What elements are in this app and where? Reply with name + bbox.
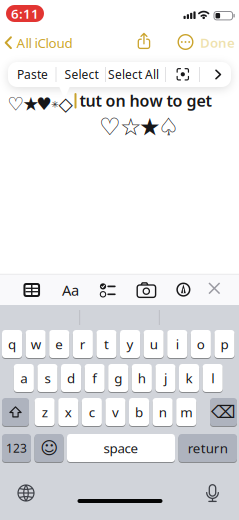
staticText: 6:11 [11, 5, 39, 22]
button[interactable]: u [144, 330, 164, 358]
button[interactable]: e [49, 330, 69, 358]
button[interactable]: b [129, 398, 149, 426]
staticText: g [114, 369, 122, 387]
staticText: ♡ [7, 93, 24, 115]
staticText: Done [200, 34, 235, 51]
button[interactable]: Emoji [34, 434, 63, 462]
staticText: t [104, 335, 109, 353]
button[interactable]: Scan Text [177, 68, 189, 80]
staticText: l [211, 369, 214, 387]
staticText: ★ [139, 113, 161, 141]
staticText: Paste [17, 66, 48, 82]
staticText: u [150, 335, 158, 353]
button[interactable]: Select All [108, 66, 159, 82]
staticText: ✳ [51, 99, 59, 110]
button[interactable]: Select [64, 66, 98, 82]
button[interactable]: Insert table [23, 283, 40, 297]
staticText: Select [64, 66, 98, 82]
button[interactable]: Recording indicator 6:11 [6, 5, 44, 22]
staticText: w [31, 335, 41, 353]
button[interactable]: w [26, 330, 46, 358]
staticText: a [20, 369, 27, 387]
button[interactable]: return [178, 434, 237, 462]
staticText: ☆ [120, 113, 142, 141]
staticText: q [8, 335, 16, 353]
staticText: ★ [22, 93, 39, 115]
staticText: k [186, 369, 193, 387]
button[interactable]: Paste [17, 66, 48, 82]
staticText: space [103, 439, 138, 457]
staticText: ♡ [99, 113, 121, 141]
button[interactable]: More menu items [215, 69, 221, 79]
staticText: p [220, 335, 228, 353]
button[interactable]: Checklist [100, 283, 116, 297]
button[interactable]: k [179, 364, 199, 392]
button[interactable]: f [85, 364, 105, 392]
staticText: h [138, 369, 146, 387]
button[interactable]: v [105, 398, 125, 426]
staticText: x [65, 403, 72, 421]
button[interactable]: Dismiss keyboard tools [208, 282, 220, 294]
button[interactable]: h [132, 364, 152, 392]
staticText: m [180, 403, 192, 421]
button[interactable]: a [14, 364, 34, 392]
staticText: 123 [6, 440, 27, 456]
button[interactable]: q [2, 330, 22, 358]
button[interactable]: Format [62, 280, 79, 300]
button[interactable]: i [167, 330, 187, 358]
button[interactable]: Markup [176, 283, 190, 297]
button[interactable]: More [177, 34, 193, 50]
staticText: i [176, 335, 179, 353]
button[interactable]: Insert photo [137, 282, 156, 298]
staticText: ♥ [36, 94, 52, 114]
button[interactable]: Done [200, 34, 235, 51]
staticText: j [164, 369, 167, 387]
staticText: e [55, 335, 63, 353]
button[interactable]: c [82, 398, 102, 426]
staticText: Select All [108, 66, 159, 82]
staticText: c [89, 403, 95, 421]
button[interactable]: j [155, 364, 175, 392]
staticText: s [44, 369, 50, 387]
button[interactable]: Delete [210, 398, 237, 426]
staticText: y [127, 335, 134, 353]
button[interactable]: 123 [2, 434, 31, 462]
staticText: ☺ [40, 438, 58, 458]
staticText: All iCloud [16, 34, 72, 52]
button[interactable]: n [153, 398, 173, 426]
staticText: ⌫ [211, 402, 236, 422]
button[interactable]: s [37, 364, 57, 392]
button[interactable]: m [176, 398, 196, 426]
button[interactable]: r [73, 330, 93, 358]
staticText: n [159, 403, 167, 421]
staticText: b [135, 403, 143, 421]
button[interactable]: l [203, 364, 223, 392]
button[interactable]: Next keyboard [17, 484, 35, 502]
staticText: return [188, 439, 228, 457]
staticText: f [92, 369, 97, 387]
staticText: ◇ [58, 93, 72, 115]
button[interactable]: y [120, 330, 140, 358]
button[interactable]: p [214, 330, 234, 358]
button[interactable]: d [61, 364, 81, 392]
staticText: d [67, 369, 75, 387]
button[interactable]: Shift [2, 398, 29, 426]
button[interactable]: t [96, 330, 116, 358]
button[interactable]: space [67, 434, 175, 462]
button[interactable]: g [108, 364, 128, 392]
button[interactable]: o [191, 330, 211, 358]
staticText: r [80, 335, 86, 353]
button[interactable]: Share [137, 31, 151, 51]
staticText: tut on how to get [80, 90, 212, 111]
staticText: Aa [62, 280, 79, 300]
button[interactable]: Back to All iCloud [4, 34, 72, 52]
staticText: v [112, 403, 119, 421]
button[interactable]: z [35, 398, 55, 426]
staticText: o [197, 335, 205, 353]
button[interactable]: Dictate [206, 484, 218, 502]
staticText: z [42, 403, 48, 421]
button[interactable]: x [58, 398, 78, 426]
staticText: ♤ [157, 113, 179, 141]
